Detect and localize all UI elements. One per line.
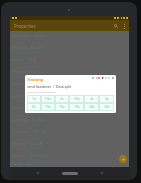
button[interactable]: 2.5x <box>69 95 84 103</box>
staticText: admin <box>34 33 45 38</box>
staticText: Data split <box>56 84 72 89</box>
button[interactable]: 10x <box>55 103 69 111</box>
button[interactable]: Last sync <box>10 89 129 101</box>
button[interactable]: 4x <box>99 95 114 103</box>
staticText: 4x <box>105 97 109 101</box>
button[interactable]: 5x <box>27 103 41 111</box>
staticText: 30x <box>104 105 110 109</box>
staticText: to wait to do something <box>27 90 56 93</box>
staticText: 2.5x <box>74 97 80 101</box>
staticText: Wi-Fi home <box>30 153 49 158</box>
staticText: 3.2.1 <box>26 161 35 165</box>
staticText: 7.5x <box>45 105 51 109</box>
button[interactable]: Recents <box>86 167 118 179</box>
staticText: Serial number <box>12 81 36 86</box>
staticText: English <box>32 117 45 122</box>
button[interactable]: 3x <box>84 95 99 103</box>
button[interactable]: About <box>10 161 129 165</box>
staticText: 76 % <box>28 57 37 62</box>
staticText: / <box>53 84 56 89</box>
staticText: 3x <box>90 97 94 101</box>
button[interactable]: Home <box>54 167 86 179</box>
staticText: 10x <box>59 105 65 109</box>
button[interactable]: Firmware <box>10 65 129 77</box>
button[interactable]: 15x <box>69 103 84 111</box>
button[interactable]: 7.5x <box>41 103 55 111</box>
staticText: PX-440 <box>31 45 43 50</box>
button[interactable]: 30x <box>99 103 114 111</box>
button[interactable]: More options <box>120 22 128 30</box>
button[interactable]: Play <box>102 77 104 79</box>
button[interactable]: 1x <box>27 95 41 103</box>
staticText: send handover <box>27 84 53 89</box>
staticText: 15x <box>74 105 80 109</box>
button[interactable]: 20x <box>84 103 99 111</box>
button[interactable]: Profile <box>10 101 129 113</box>
staticText: 2x <box>60 97 64 101</box>
staticText: 88120A <box>39 81 52 86</box>
button[interactable]: Serial number <box>10 77 129 89</box>
button[interactable]: 2x <box>55 95 69 103</box>
staticText: 12:40 <box>31 93 41 98</box>
staticText: v3.1.8 <box>31 69 41 74</box>
button[interactable]: Back <box>22 167 54 179</box>
staticText: Properties <box>14 23 36 29</box>
staticText: UTC +01 <box>33 129 47 134</box>
button[interactable]: 1.5x <box>41 95 55 103</box>
button[interactable]: Own name <box>10 29 129 41</box>
staticText: 20x <box>89 105 95 109</box>
button[interactable]: Network <box>10 149 129 161</box>
staticText: 1x <box>32 97 36 101</box>
staticText: Default <box>26 105 39 110</box>
staticText: 5x <box>32 105 36 109</box>
button[interactable]: Search <box>111 21 120 30</box>
button[interactable]: Add <box>119 155 127 163</box>
staticText: Last sync <box>12 93 28 98</box>
staticText: 1.5x <box>45 97 51 101</box>
staticText: 12.4 GB <box>29 141 43 146</box>
staticText: Training <box>27 77 44 82</box>
